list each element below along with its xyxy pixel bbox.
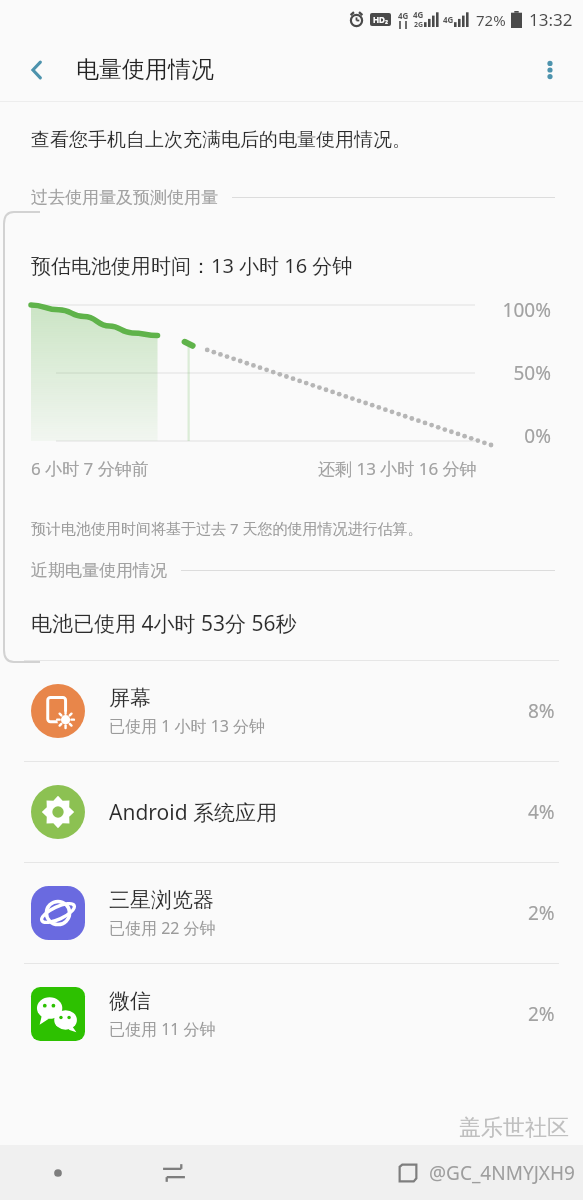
staticText: 电池已使用 4小时 53分 56秒 xyxy=(31,609,297,638)
staticText: 已使用 22 分钟 xyxy=(109,917,216,939)
button[interactable]: 三星浏览器 xyxy=(0,863,583,963)
staticText: 已使用 1 小时 13 分钟 xyxy=(109,715,266,737)
button[interactable]: Menu xyxy=(0,1145,116,1200)
staticText: 4G xyxy=(443,14,454,25)
staticText: 电量使用情况 xyxy=(76,55,214,84)
staticText: 4G xyxy=(413,9,424,20)
button[interactable]: Android 系统应用 xyxy=(0,762,583,862)
staticText: 2% xyxy=(528,900,555,926)
staticText: 微信 xyxy=(109,988,151,1014)
staticText: 预估电池使用时间：13 小时 16 分钟 xyxy=(31,252,353,279)
staticText: 屏幕 xyxy=(109,685,151,711)
staticText: HD₂ xyxy=(373,14,389,25)
staticText: 查看您手机自上次充满电后的电量使用情况。 xyxy=(31,128,411,152)
button[interactable]: Recents xyxy=(116,1145,232,1200)
staticText: 50% xyxy=(513,360,551,386)
button[interactable]: 微信 xyxy=(0,964,583,1064)
staticText: 近期电量使用情况 xyxy=(31,560,167,581)
staticText: 6 小时 7 分钟前 xyxy=(31,457,149,480)
staticText: 盖乐世社区 xyxy=(459,1114,569,1142)
staticText: @GC_4NMYJXH9 xyxy=(429,1160,575,1186)
staticText: Android 系统应用 xyxy=(109,798,278,827)
staticText: 三星浏览器 xyxy=(109,887,214,913)
button[interactable]: 屏幕 xyxy=(0,661,583,761)
staticText: 2% xyxy=(528,1001,555,1027)
staticText: 13:32 xyxy=(529,8,573,31)
staticText: 已使用 11 分钟 xyxy=(109,1018,216,1040)
staticText: 72% xyxy=(476,10,506,30)
staticText: 4% xyxy=(528,799,555,825)
staticText: 还剩 13 小时 16 分钟 xyxy=(318,457,477,480)
button[interactable]: More options xyxy=(525,45,575,95)
button[interactable]: Back xyxy=(12,45,62,95)
staticText: 8% xyxy=(528,698,555,724)
staticText: 100% xyxy=(502,297,551,323)
staticText: 2G xyxy=(414,20,424,30)
staticText: 0% xyxy=(524,423,551,449)
staticText: 4G xyxy=(398,10,409,21)
staticText: 过去使用量及预测使用量 xyxy=(31,187,218,208)
staticText: 预计电池使用时间将基于过去 7 天您的使用情况进行估算。 xyxy=(31,518,423,538)
button[interactable]: Back xyxy=(349,1145,466,1200)
